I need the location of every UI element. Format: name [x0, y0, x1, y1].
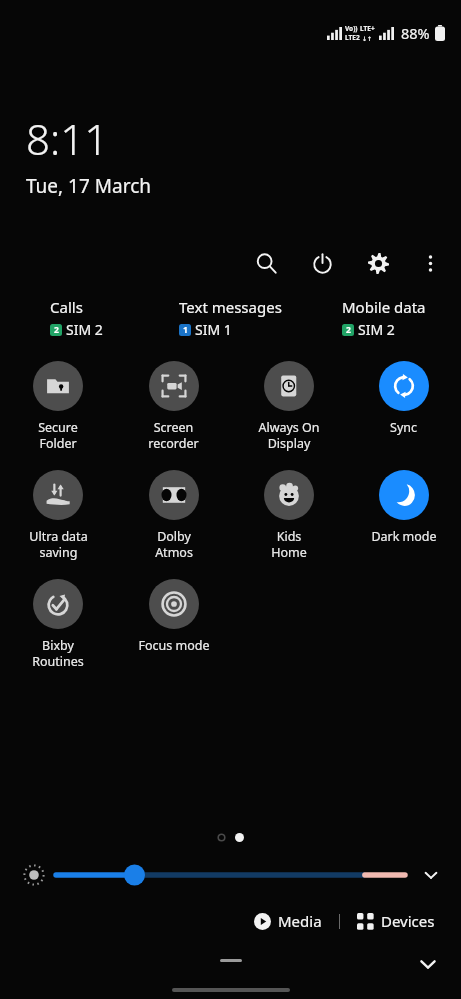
staticText: Text messages [179, 297, 282, 317]
staticText: Secure Folder [38, 419, 78, 452]
button[interactable]: Secure Folder [0, 359, 116, 454]
button[interactable]: Power off [305, 246, 339, 280]
button[interactable]: Devices [353, 907, 439, 935]
staticText: ↓↑ [362, 35, 373, 42]
button[interactable]: More options [413, 246, 447, 280]
button[interactable]: Bixby Routines [0, 577, 116, 672]
button[interactable]: Collapse [411, 947, 445, 981]
button[interactable]: Always On Display [231, 359, 346, 454]
staticText: Devices [381, 911, 435, 931]
button[interactable]: Dark mode [346, 468, 461, 547]
staticText: SIM 2 [66, 320, 103, 339]
staticText: 1 [183, 324, 188, 336]
staticText: Dark mode [371, 528, 437, 545]
staticText: SIM 2 [358, 320, 395, 339]
button[interactable]: Mobile data [342, 297, 426, 339]
staticText: Always On Display [258, 419, 320, 452]
button[interactable]: Dolby Atmos [116, 468, 231, 563]
staticText: Dolby Atmos [155, 528, 193, 561]
staticText: Mobile data [342, 297, 426, 317]
staticText: 2 [54, 324, 59, 336]
staticText: SIM 1 [195, 320, 232, 339]
button[interactable]: Search [249, 246, 283, 280]
button[interactable]: Focus mode [116, 577, 231, 656]
staticText: 8:11 [26, 110, 109, 167]
staticText: LTE+ [360, 24, 375, 33]
button[interactable]: Media [250, 907, 326, 935]
staticText: Vo)) [345, 24, 358, 33]
staticText: Focus mode [138, 637, 210, 654]
staticText: Calls [50, 297, 83, 317]
button[interactable]: Settings [361, 246, 395, 280]
staticText: Screen recorder [148, 419, 199, 452]
staticText: LTE2 [345, 33, 360, 42]
button[interactable]: Sync [346, 359, 461, 438]
button[interactable]: Brightness [56, 862, 405, 888]
staticText: Bixby Routines [32, 637, 84, 670]
staticText: Sync [390, 419, 417, 436]
button[interactable]: Screen recorder [116, 359, 231, 454]
staticText: Ultra data saving [29, 528, 88, 561]
staticText: Kids Home [271, 528, 307, 561]
button[interactable]: Kids Home [231, 468, 346, 563]
staticText: Tue, 17 March [26, 173, 152, 199]
staticText: 88% [401, 23, 430, 43]
staticText: Media [278, 911, 322, 931]
button[interactable]: Brightness settings [415, 859, 447, 891]
button[interactable]: Ultra data saving [0, 468, 116, 563]
button[interactable]: Calls [50, 297, 103, 339]
staticText: 2 [346, 324, 351, 336]
button[interactable]: Text messages [179, 297, 282, 339]
